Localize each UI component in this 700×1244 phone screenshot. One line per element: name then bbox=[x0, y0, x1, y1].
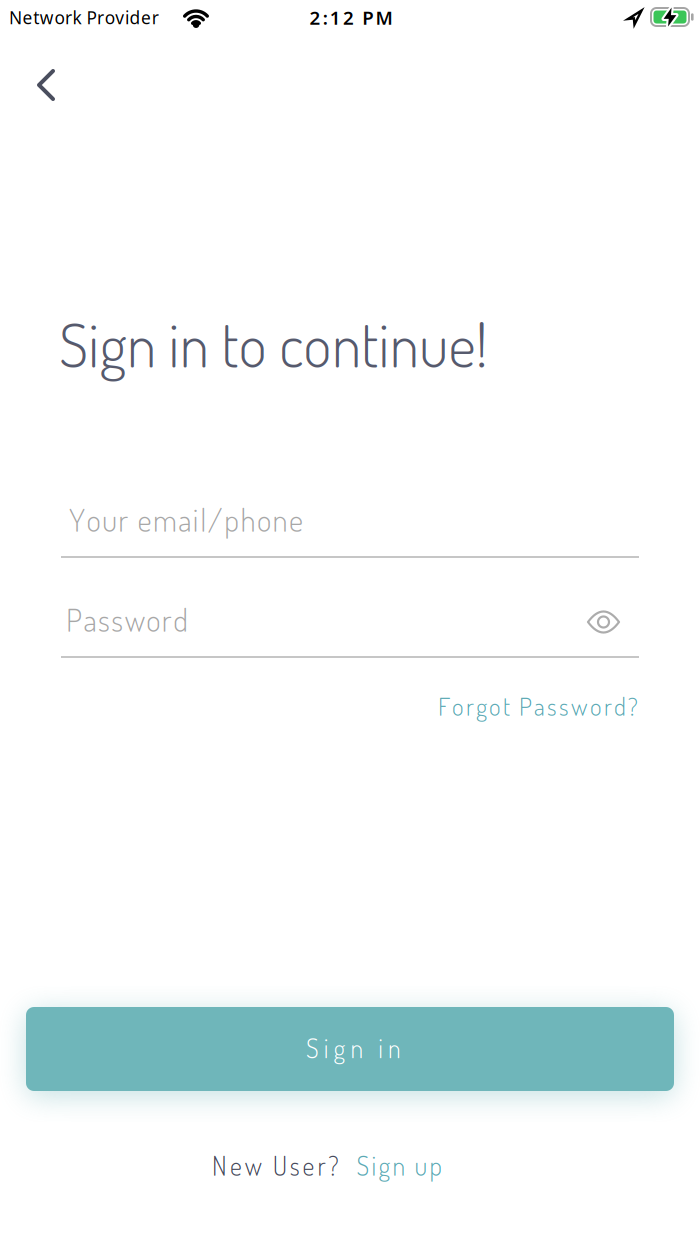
staticText: ? bbox=[328, 1149, 338, 1182]
staticText: o bbox=[86, 500, 100, 539]
staticText: t bbox=[503, 690, 510, 722]
staticText: m bbox=[153, 500, 177, 539]
staticText: d bbox=[614, 690, 626, 722]
staticText: e bbox=[289, 500, 303, 539]
staticText: i bbox=[371, 1149, 376, 1182]
staticText: s bbox=[559, 690, 569, 722]
button[interactable]: S bbox=[356, 1149, 442, 1182]
staticText: e bbox=[230, 1149, 242, 1182]
staticText: r bbox=[97, 6, 104, 29]
staticText: P bbox=[362, 5, 373, 30]
button[interactable]: Your email/phone bbox=[61, 498, 639, 558]
staticText: r bbox=[604, 690, 612, 722]
staticText: d bbox=[173, 600, 188, 639]
staticText: c bbox=[279, 306, 303, 382]
staticText: n bbox=[332, 306, 361, 382]
staticText: e bbox=[23, 6, 33, 29]
staticText: u bbox=[419, 306, 448, 382]
staticText: o bbox=[452, 690, 464, 722]
staticText: i bbox=[378, 1032, 383, 1064]
staticText: u bbox=[415, 1149, 428, 1182]
staticText: r bbox=[65, 6, 72, 29]
staticText: U bbox=[273, 1149, 287, 1182]
staticText: g bbox=[476, 690, 487, 722]
staticText: S bbox=[59, 306, 88, 382]
staticText: Y bbox=[69, 500, 85, 539]
staticText: t bbox=[33, 6, 39, 29]
button[interactable]: Back bbox=[25, 61, 67, 109]
staticText: p bbox=[430, 1149, 442, 1182]
staticText: e bbox=[141, 6, 151, 29]
staticText: s bbox=[290, 1149, 300, 1182]
staticText: i bbox=[88, 306, 99, 382]
staticText: N bbox=[212, 1149, 227, 1182]
staticText: a bbox=[534, 690, 545, 722]
staticText: r bbox=[466, 690, 474, 722]
staticText: N bbox=[9, 6, 22, 29]
staticText: r bbox=[317, 1149, 325, 1182]
staticText: o bbox=[146, 600, 160, 639]
staticText: 1 bbox=[330, 5, 341, 30]
staticText: M bbox=[376, 5, 393, 30]
staticText: : bbox=[323, 5, 328, 30]
staticText: w bbox=[245, 1149, 262, 1182]
staticText: a bbox=[178, 500, 191, 539]
staticText: u bbox=[102, 500, 117, 539]
staticText: o bbox=[257, 500, 271, 539]
staticText: a bbox=[83, 600, 96, 639]
staticText: d bbox=[129, 6, 140, 29]
staticText: l bbox=[200, 500, 206, 539]
staticText: w bbox=[40, 6, 54, 29]
staticText: h bbox=[241, 500, 256, 539]
staticText: t bbox=[361, 306, 378, 382]
staticText: n bbox=[390, 306, 419, 382]
staticText: o bbox=[304, 306, 332, 382]
staticText: e bbox=[448, 306, 475, 382]
button[interactable]: S bbox=[26, 1007, 674, 1091]
staticText: P bbox=[66, 600, 82, 639]
staticText: p bbox=[224, 500, 239, 539]
staticText: s bbox=[547, 690, 557, 722]
staticText: i bbox=[378, 306, 389, 382]
staticText: S bbox=[356, 1149, 369, 1182]
staticText: k bbox=[73, 6, 82, 29]
staticText: n bbox=[272, 500, 287, 539]
staticText: w bbox=[571, 690, 588, 722]
staticText: r bbox=[162, 600, 172, 639]
staticText: o bbox=[105, 6, 115, 29]
staticText: i bbox=[193, 500, 199, 539]
staticText: s bbox=[98, 600, 110, 639]
staticText: n bbox=[350, 1032, 363, 1064]
button[interactable]: Password bbox=[61, 598, 639, 658]
button[interactable]: Show password bbox=[584, 606, 624, 638]
staticText: o bbox=[590, 690, 602, 722]
staticText: F bbox=[438, 690, 450, 722]
staticText: e bbox=[137, 500, 151, 539]
staticText: n bbox=[180, 306, 209, 382]
staticText: i bbox=[125, 6, 129, 29]
staticText: 2 bbox=[343, 5, 354, 30]
staticText: g bbox=[334, 1032, 346, 1064]
staticText: P bbox=[86, 6, 96, 29]
staticText: g bbox=[378, 1149, 390, 1182]
staticText: n bbox=[388, 1032, 401, 1064]
staticText: 2 bbox=[309, 5, 320, 30]
staticText: r bbox=[118, 500, 128, 539]
staticText: g bbox=[100, 306, 127, 382]
staticText: o bbox=[489, 690, 501, 722]
staticText: ! bbox=[476, 306, 488, 382]
staticText: s bbox=[111, 600, 123, 639]
staticText: n bbox=[127, 306, 156, 382]
staticText: t bbox=[221, 306, 238, 382]
staticText: o bbox=[54, 6, 64, 29]
staticText: ? bbox=[628, 690, 638, 722]
staticText: r bbox=[152, 6, 159, 29]
staticText: P bbox=[519, 690, 532, 722]
staticText: n bbox=[392, 1149, 405, 1182]
staticText: e bbox=[303, 1149, 315, 1182]
staticText: v bbox=[115, 6, 124, 29]
staticText: i bbox=[324, 1032, 329, 1064]
button[interactable]: F bbox=[438, 690, 638, 722]
staticText: / bbox=[208, 500, 223, 539]
staticText: S bbox=[306, 1032, 319, 1064]
